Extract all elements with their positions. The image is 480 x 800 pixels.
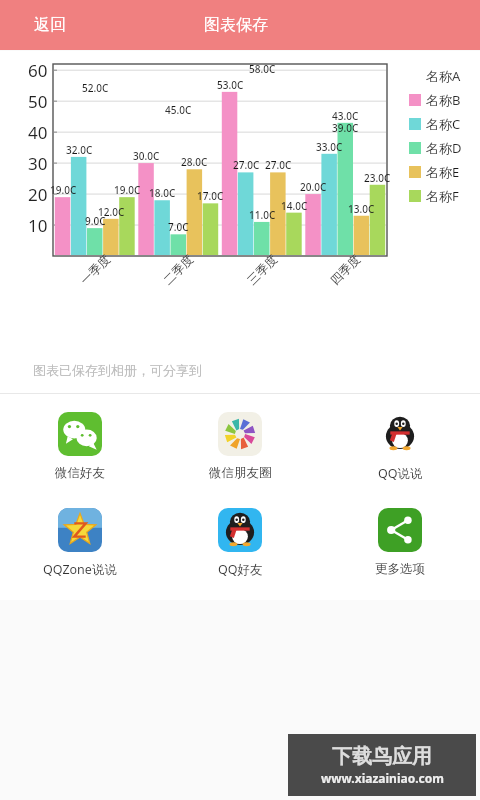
staticText: 30.0C: [133, 149, 160, 163]
staticText: 名称F: [426, 187, 459, 205]
button[interactable]: 返回: [26, 9, 74, 41]
staticText: 52.0C: [82, 81, 109, 95]
staticText: 30: [28, 152, 48, 175]
staticText: 14.0C: [281, 199, 308, 213]
staticText: 名称A: [426, 67, 461, 85]
staticText: 23.0C: [364, 171, 391, 185]
staticText: 名称D: [426, 139, 462, 157]
staticText: QQ说说: [378, 465, 423, 482]
staticText: 40: [28, 121, 48, 144]
staticText: 43.0C: [332, 109, 359, 123]
staticText: 39.0C: [332, 121, 359, 135]
staticText: QQZone说说: [43, 561, 117, 578]
staticText: QQ好友: [218, 561, 263, 578]
staticText: 20: [28, 183, 48, 206]
staticText: 三季度: [244, 251, 280, 288]
staticText: 27.0C: [233, 158, 260, 172]
button[interactable]: QQ: [160, 504, 320, 582]
staticText: 50: [28, 90, 48, 113]
staticText: 12.0C: [98, 205, 125, 219]
button[interactable]: More options: [320, 504, 480, 581]
staticText: 下载鸟应用: [332, 744, 432, 769]
staticText: 53.0C: [217, 78, 244, 92]
other: More options: [378, 508, 422, 552]
staticText: 图表已保存到相册，可分享到: [33, 362, 202, 378]
other: QQ: [378, 412, 422, 456]
staticText: 11.0C: [249, 208, 276, 222]
staticText: 17.0C: [197, 189, 224, 203]
staticText: 45.0C: [165, 103, 192, 117]
staticText: 更多选项: [375, 561, 425, 577]
button[interactable]: QQ Zone: [0, 504, 160, 582]
staticText: 返回: [34, 15, 66, 35]
staticText: 微信好友: [55, 465, 105, 481]
staticText: 19.0C: [114, 183, 141, 197]
staticText: 9.0C: [85, 214, 106, 228]
staticText: 一季度: [77, 251, 113, 288]
staticText: 27.0C: [265, 158, 292, 172]
staticText: 33.0C: [316, 140, 343, 154]
staticText: 28.0C: [181, 155, 208, 169]
other: WeChat friend: [58, 412, 102, 456]
staticText: 图表保存: [204, 15, 268, 35]
staticText: 四季度: [327, 251, 363, 288]
other: QQ: [218, 508, 262, 552]
staticText: 19.0C: [50, 183, 77, 197]
staticText: 名称B: [426, 91, 461, 109]
staticText: 10: [28, 214, 48, 237]
staticText: 名称E: [426, 163, 460, 181]
other: WeChat Moments: [218, 412, 262, 456]
button[interactable]: WeChat friend: [0, 408, 160, 485]
staticText: 二季度: [160, 251, 196, 288]
staticText: 微信朋友圈: [209, 465, 272, 481]
staticText: 58.0C: [249, 62, 276, 76]
staticText: 13.0C: [348, 202, 375, 216]
other: QQ Zone: [58, 508, 102, 552]
staticText: 60: [28, 59, 48, 82]
button[interactable]: QQ: [320, 408, 480, 486]
staticText: 7.0C: [168, 220, 189, 234]
staticText: www.xiazainiao.com: [321, 770, 444, 786]
staticText: 20.0C: [300, 180, 327, 194]
staticText: 18.0C: [149, 186, 176, 200]
button[interactable]: WeChat Moments: [160, 408, 320, 485]
staticText: 32.0C: [66, 143, 93, 157]
staticText: 名称C: [426, 115, 461, 133]
